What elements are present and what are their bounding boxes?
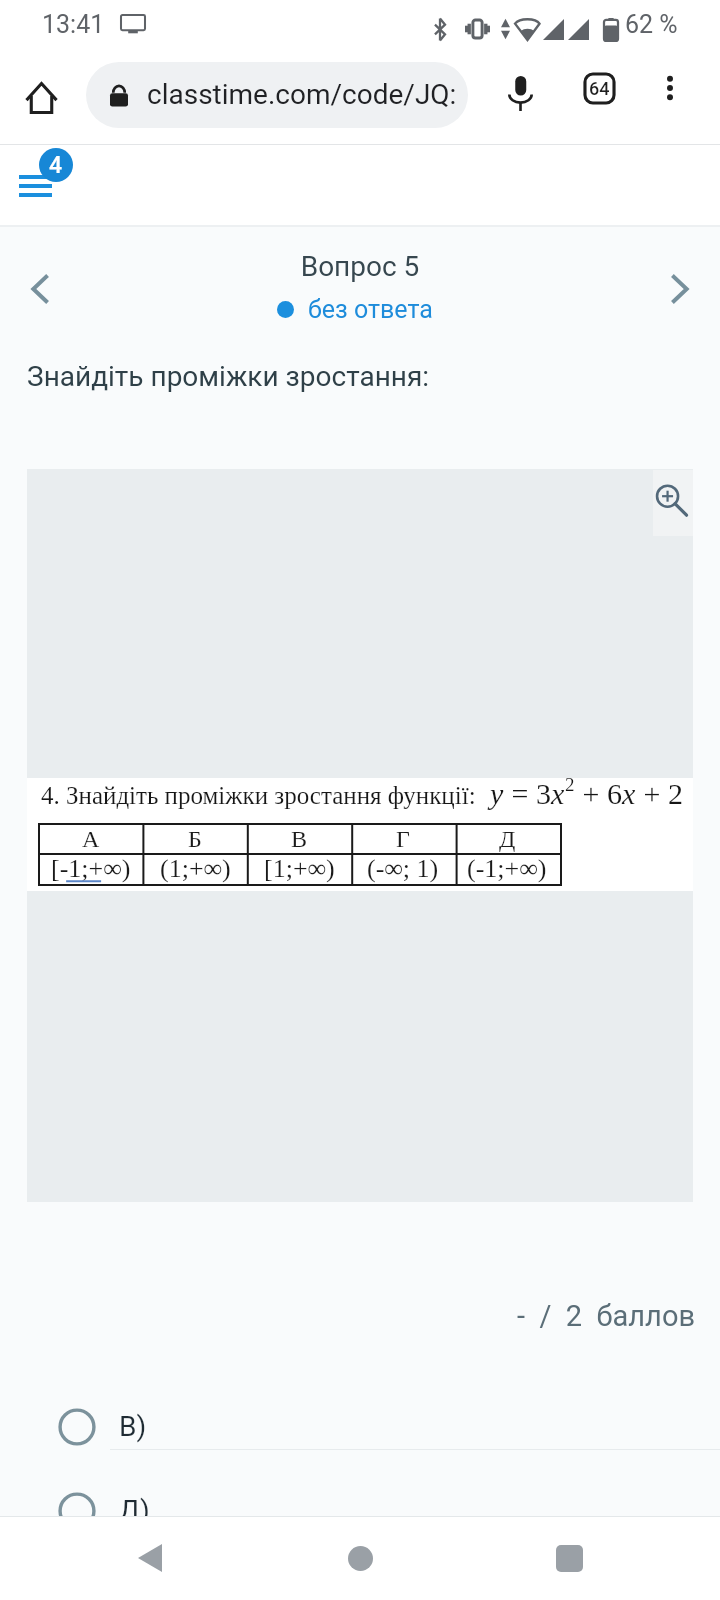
button[interactable]: Menu: [2, 146, 82, 218]
staticText: y: [490, 777, 504, 810]
staticText: А: [82, 826, 100, 853]
button[interactable]: Next question: [646, 256, 712, 322]
staticText: + 2: [636, 777, 683, 810]
button[interactable]: Tabs: [572, 61, 626, 115]
button[interactable]: Voice search: [491, 64, 549, 122]
staticText: = 3: [504, 777, 551, 810]
staticText: 13:41: [42, 10, 105, 39]
button[interactable]: More options: [643, 61, 697, 115]
button[interactable]: Home: [12, 69, 70, 127]
button[interactable]: Recent apps: [534, 1523, 604, 1593]
staticText: 62 %: [625, 10, 678, 39]
staticText: x: [622, 777, 636, 810]
staticText: classtime.com/code/JQ:: [147, 78, 467, 111]
staticText: 64: [589, 78, 610, 99]
staticText: Знайдіть проміжки зростання:: [27, 360, 430, 393]
staticText: - / 2 баллов: [0, 1299, 695, 1333]
staticText: (1;+∞): [160, 854, 231, 883]
staticText: В): [119, 1410, 147, 1443]
staticText: (-∞; 1): [367, 854, 439, 883]
staticText: x: [551, 777, 565, 810]
staticText: 4. Знайдіть проміжки зростання функції:: [41, 782, 476, 810]
staticText: Вопрос 5: [0, 250, 720, 283]
staticText: 4: [49, 152, 63, 179]
staticText: Д: [499, 826, 516, 853]
button[interactable]: Back: [115, 1523, 185, 1593]
button[interactable]: Home: [325, 1523, 395, 1593]
button[interactable]: Zoom in: [653, 470, 693, 536]
button[interactable]: classtime.com/code/JQ:: [86, 62, 468, 128]
button[interactable]: Д): [0, 1470, 720, 1534]
staticText: [-1;+∞): [51, 854, 131, 883]
staticText: Б: [188, 826, 202, 853]
staticText: (-1;+∞): [467, 854, 547, 883]
button[interactable]: В): [0, 1386, 720, 1450]
staticText: Д): [119, 1494, 150, 1527]
staticText: + 6: [575, 777, 622, 810]
staticText: 2: [565, 774, 575, 795]
staticText: [1;+∞): [264, 854, 335, 883]
staticText: без ответа: [308, 295, 433, 324]
button[interactable]: Previous question: [8, 256, 74, 322]
staticText: Г: [396, 826, 410, 853]
staticText: В: [291, 826, 308, 853]
